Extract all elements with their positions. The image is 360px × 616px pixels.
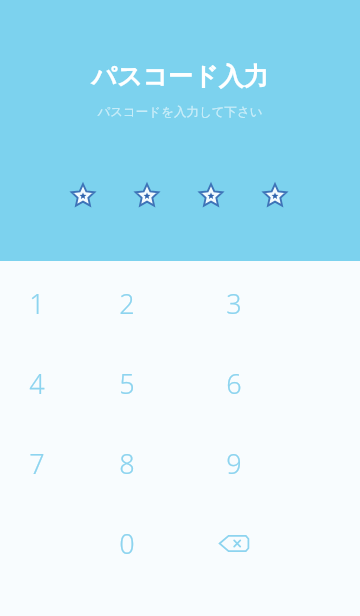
staticText: 8: [119, 445, 135, 482]
staticText: 2: [119, 285, 135, 322]
button[interactable]: 3: [191, 263, 277, 343]
staticText: パスコード入力: [0, 61, 360, 92]
staticText: 1: [29, 285, 45, 322]
button[interactable]: 4: [0, 343, 73, 423]
staticText: 9: [226, 445, 242, 482]
button[interactable]: 6: [191, 343, 277, 423]
staticText: 5: [119, 365, 135, 402]
staticText: 0: [119, 525, 135, 562]
staticText: 3: [226, 285, 242, 322]
button[interactable]: 1: [0, 263, 73, 343]
button[interactable]: 0: [84, 503, 170, 583]
button[interactable]: 2: [84, 263, 170, 343]
button[interactable]: 7: [0, 423, 73, 503]
staticText: 6: [226, 365, 242, 402]
button[interactable]: 8: [84, 423, 170, 503]
button[interactable]: Backspace: [191, 503, 277, 583]
button[interactable]: 9: [191, 423, 277, 503]
staticText: 4: [29, 365, 45, 402]
staticText: 7: [29, 445, 45, 482]
staticText: パスコードを入力して下さい: [0, 104, 360, 120]
button[interactable]: 5: [84, 343, 170, 423]
